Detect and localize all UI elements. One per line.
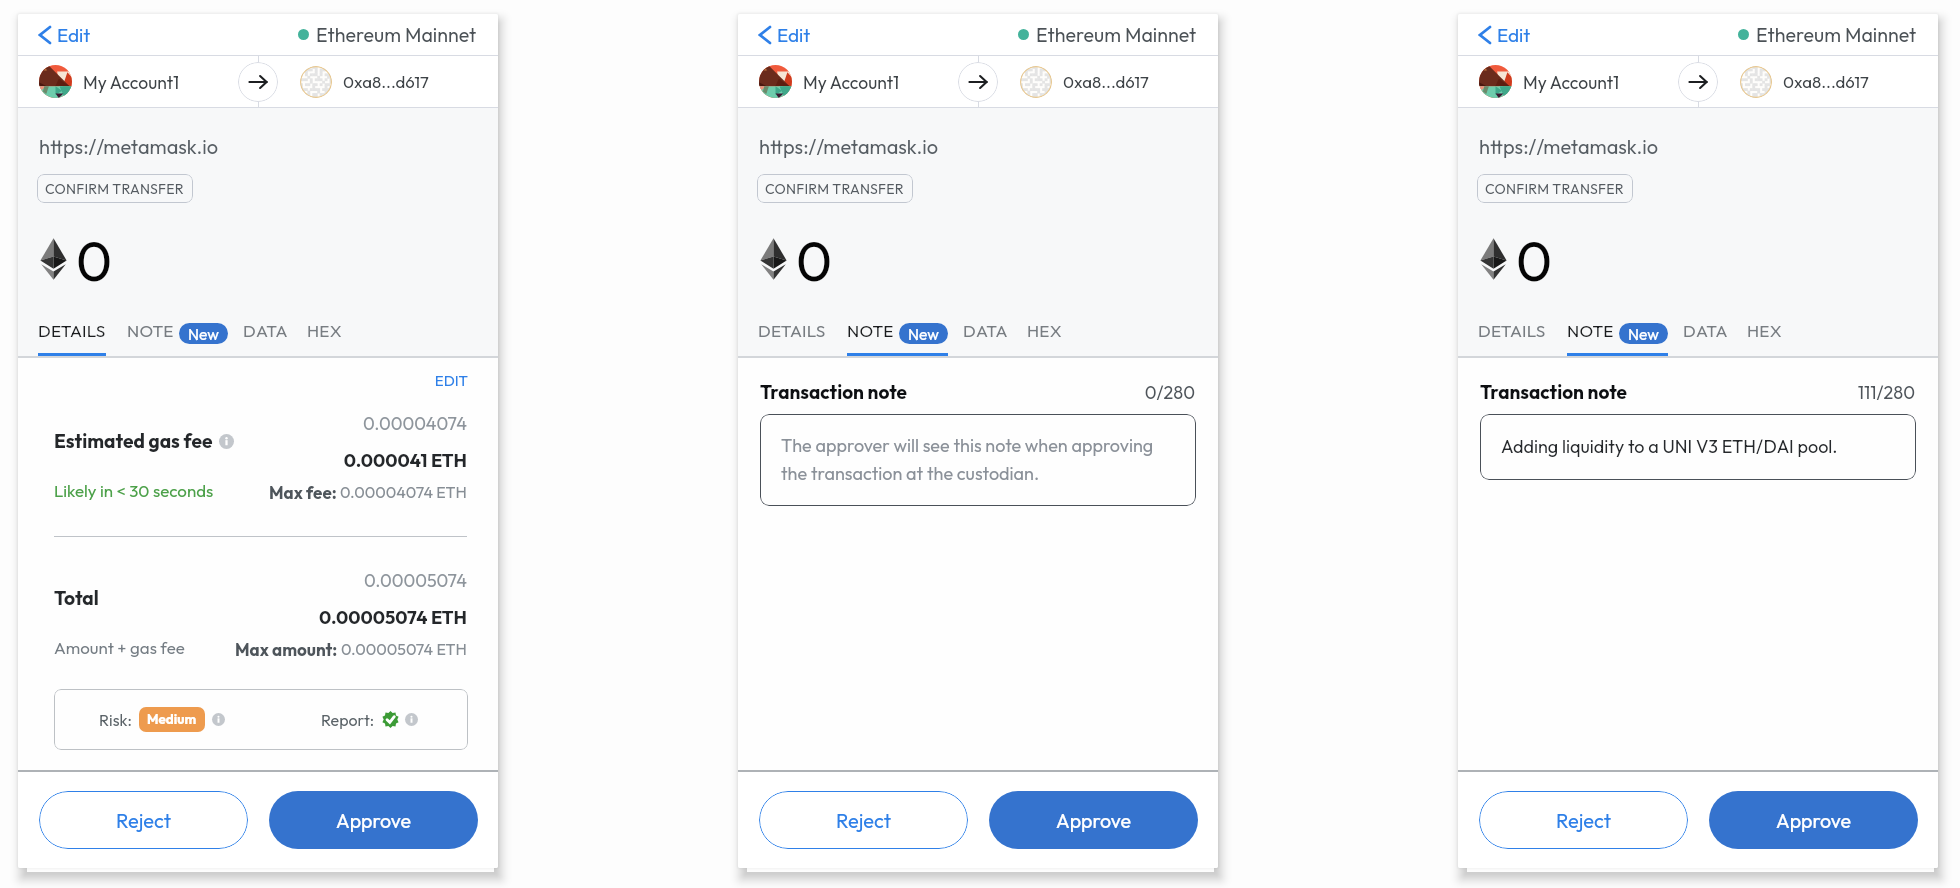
staticText: My Account1 [803, 71, 900, 93]
staticText: 111/280 [1458, 381, 1915, 404]
staticText: Likely in < 30 seconds [54, 480, 214, 501]
button[interactable]: EDIT [18, 371, 468, 390]
button[interactable]: DATA [243, 308, 288, 356]
button[interactable]: Reject [39, 791, 248, 849]
button[interactable]: DETAILS [38, 308, 106, 356]
staticText: Edit [57, 23, 91, 47]
staticText: Max amount: [235, 639, 341, 660]
staticText: 0.00005074 [54, 569, 467, 592]
staticText: 0 [1516, 226, 1553, 295]
button[interactable]: Edit [1478, 14, 1531, 55]
staticText: DATA [963, 320, 1008, 342]
button[interactable]: DATA [963, 308, 1008, 356]
button[interactable]: Approve [989, 791, 1198, 849]
staticText: 0xa8...d617 [1783, 71, 1869, 92]
staticText: https://metamask.io [39, 134, 219, 159]
button[interactable]: Approve [1709, 791, 1918, 849]
button[interactable]: Medium [139, 707, 205, 732]
button[interactable]: NOTE [127, 308, 228, 356]
staticText: Reject [836, 808, 892, 833]
staticText: Transaction note [1480, 380, 1627, 404]
button[interactable]: CONFIRM TRANSFER [757, 174, 913, 203]
staticText: DATA [243, 320, 288, 342]
staticText: DETAILS [758, 320, 826, 342]
staticText: Estimated gas fee [54, 429, 213, 453]
button[interactable]: DATA [1683, 308, 1728, 356]
staticText: Reject [1556, 808, 1612, 833]
staticText: My Account1 [1523, 71, 1620, 93]
button[interactable]: HEX [307, 308, 342, 356]
staticText: Edit [777, 23, 811, 47]
staticText: CONFIRM TRANSFER [1485, 180, 1625, 198]
staticText: https://metamask.io [759, 134, 939, 159]
button[interactable]: Swap direction [958, 62, 998, 102]
button[interactable]: Reject [759, 791, 968, 849]
button[interactable]: Adding liquidity to a UNI V3 ETH/DAI poo… [1480, 414, 1916, 480]
staticText: DETAILS [1478, 320, 1546, 342]
staticText: Total [54, 586, 99, 610]
staticText: Amount + gas fee [54, 637, 185, 658]
button[interactable]: NOTE [847, 308, 948, 356]
staticText: Edit [1497, 23, 1531, 47]
staticText: 0xa8...d617 [1063, 71, 1149, 92]
staticText: Ethereum Mainnet [1036, 22, 1197, 47]
staticText: Transaction note [760, 380, 907, 404]
staticText: 0.000041 ETH [54, 449, 467, 472]
staticText: Adding liquidity to a UNI V3 ETH/DAI poo… [1501, 435, 1838, 458]
staticText: CONFIRM TRANSFER [45, 180, 185, 198]
staticText: HEX [1747, 320, 1782, 342]
staticText: 0.00005074 ETH [341, 639, 467, 659]
staticText: The approver will see this note when app… [781, 434, 1177, 485]
button[interactable]: Edit [38, 14, 91, 55]
staticText: 0.00004074 [54, 412, 467, 435]
staticText: New [908, 324, 939, 344]
staticText: 0 [76, 226, 113, 295]
staticText: NOTE [127, 320, 174, 342]
button[interactable]: CONFIRM TRANSFER [37, 174, 193, 203]
button[interactable]: DETAILS [1478, 308, 1546, 356]
staticText: New [188, 324, 219, 344]
button[interactable]: HEX [1747, 308, 1782, 356]
staticText: 0 [796, 226, 833, 295]
staticText: HEX [307, 320, 342, 342]
button[interactable]: DETAILS [758, 308, 826, 356]
button[interactable]: HEX [1027, 308, 1062, 356]
staticText: 0.00005074 ETH [54, 606, 467, 629]
staticText: Medium [147, 711, 197, 728]
staticText: NOTE [847, 320, 894, 342]
staticText: Approve [1056, 808, 1131, 833]
staticText: Reject [116, 808, 172, 833]
staticText: Approve [336, 808, 411, 833]
button[interactable]: Swap direction [238, 62, 278, 102]
staticText: HEX [1027, 320, 1062, 342]
button[interactable]: NOTE [1567, 308, 1668, 356]
staticText: New [1628, 324, 1659, 344]
staticText: 0xa8...d617 [343, 71, 429, 92]
staticText: NOTE [1567, 320, 1614, 342]
staticText: Ethereum Mainnet [1756, 22, 1917, 47]
staticText: Ethereum Mainnet [316, 22, 477, 47]
staticText: My Account1 [83, 71, 180, 93]
button[interactable]: Reject [1479, 791, 1688, 849]
staticText: Approve [1776, 808, 1851, 833]
staticText: 0.00004074 ETH [340, 482, 467, 502]
staticText: DATA [1683, 320, 1728, 342]
button[interactable]: Swap direction [1678, 62, 1718, 102]
staticText: 0/280 [738, 381, 1195, 404]
button[interactable]: Edit [758, 14, 811, 55]
staticText: Risk: [99, 710, 132, 730]
button[interactable]: Approve [269, 791, 478, 849]
button[interactable]: CONFIRM TRANSFER [1477, 174, 1633, 203]
staticText: CONFIRM TRANSFER [765, 180, 905, 198]
staticText: Report: [321, 710, 375, 730]
staticText: Max fee: [269, 482, 340, 503]
button[interactable]: The approver will see this note when app… [760, 414, 1196, 506]
staticText: DETAILS [38, 320, 106, 342]
staticText: https://metamask.io [1479, 134, 1659, 159]
